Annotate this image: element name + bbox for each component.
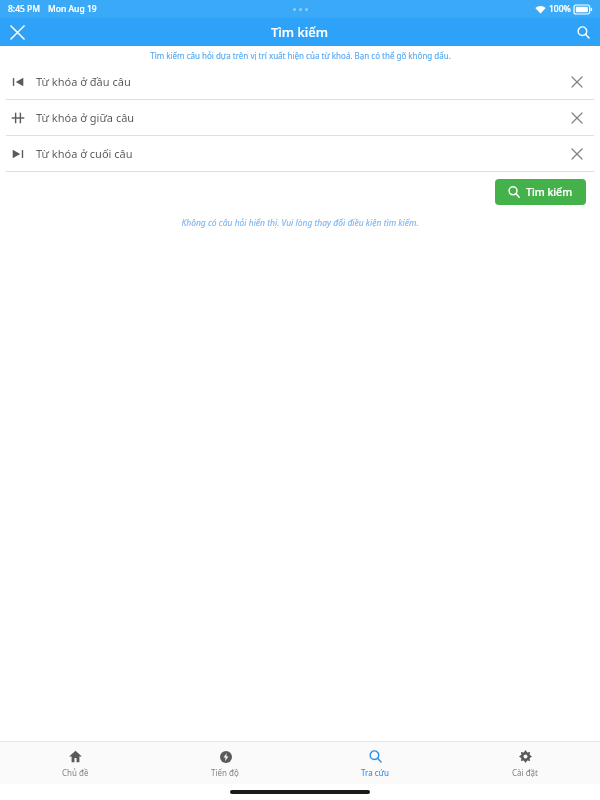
button[interactable]: Close: [0, 18, 34, 46]
staticText: Từ khóa ở cuối câu: [36, 146, 133, 161]
staticText: Tìm kiếm câu hỏi dựa trên vị trí xuất hi…: [150, 50, 451, 61]
button[interactable]: Chủ đề: [0, 742, 150, 784]
button[interactable]: Search: [566, 18, 600, 46]
staticText: Chủ đề: [62, 767, 89, 778]
button[interactable]: Tiến độ: [150, 742, 300, 784]
staticText: Không có câu hỏi hiển thị. Vui lòng thay…: [181, 217, 419, 229]
staticText: Mon Aug 19: [48, 3, 97, 15]
button[interactable]: Tra cứu: [300, 742, 450, 784]
button[interactable]: Tìm kiếm: [495, 179, 586, 205]
button[interactable]: Cài đặt: [450, 742, 600, 784]
button[interactable]: Từ khóa ở đầu câu: [0, 64, 600, 99]
button[interactable]: Clear: [560, 101, 594, 135]
staticText: 8:45 PM: [8, 3, 41, 15]
staticText: Từ khóa ở giữa câu: [36, 110, 135, 125]
button[interactable]: Từ khóa ở giữa câu: [0, 100, 600, 135]
staticText: Tra cứu: [361, 767, 389, 778]
staticText: Tìm kiếm: [271, 23, 329, 41]
staticText: Tiến độ: [211, 767, 239, 778]
button[interactable]: Clear: [560, 65, 594, 99]
staticText: Từ khóa ở đầu câu: [36, 74, 131, 89]
staticText: 100%: [549, 3, 571, 15]
button[interactable]: Clear: [560, 137, 594, 171]
button[interactable]: Từ khóa ở cuối câu: [0, 136, 600, 171]
staticText: Cài đặt: [512, 767, 538, 778]
staticText: Tìm kiếm: [526, 185, 573, 199]
